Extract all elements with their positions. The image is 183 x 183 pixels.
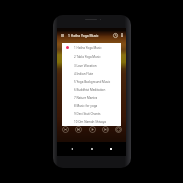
button[interactable]: Sleep timer: [111, 31, 119, 39]
button[interactable]: 9 Devi Stuti Chants: [62, 110, 121, 118]
button[interactable]: Shuffle: [62, 126, 69, 133]
button[interactable]: Back: [67, 144, 77, 154]
staticText: 4 Indian Flute: [74, 72, 94, 76]
staticText: 7 Nature Mantra: [74, 96, 98, 100]
button[interactable]: 1 Hatha Yoga Music: [62, 43, 121, 52]
button[interactable]: 5 Yoga Background Music: [62, 78, 121, 86]
button[interactable]: Menu: [59, 32, 66, 39]
staticText: 8 Music for yoga: [74, 104, 98, 108]
button[interactable]: 6 Buddhist Meditation: [62, 86, 121, 94]
staticText: 1 Hatha Yoga Music: [74, 46, 102, 50]
staticText: 6 Buddhist Meditation: [74, 88, 106, 92]
staticText: 2 Tabla Yoga Music: [74, 55, 101, 59]
button[interactable]: 3 Love Vibration: [62, 61, 121, 70]
button[interactable]: Recents: [106, 144, 116, 154]
button[interactable]: 4 Indian Flute: [62, 70, 121, 78]
button[interactable]: Repeat: [115, 126, 122, 133]
staticText: 9 Devi Stuti Chants: [74, 112, 101, 116]
button[interactable]: 7 Nature Mantra: [62, 94, 121, 102]
button[interactable]: 10 Om Namah Shivaya: [62, 118, 121, 126]
button[interactable]: Next: [102, 126, 109, 133]
staticText: 3 Love Vibration: [74, 64, 97, 68]
button[interactable]: 2 Tabla Yoga Music: [62, 52, 121, 61]
button[interactable]: Home: [87, 144, 97, 154]
button[interactable]: 8 Music for yoga: [62, 102, 121, 110]
button[interactable]: Previous: [75, 126, 82, 133]
staticText: 1 Hatha Yoga Music: [68, 33, 99, 37]
button[interactable]: More options: [119, 32, 125, 38]
staticText: 10 Om Namah Shivaya: [74, 120, 106, 124]
staticText: 5 Yoga Background Music: [74, 80, 111, 84]
button[interactable]: Play: [89, 126, 96, 133]
